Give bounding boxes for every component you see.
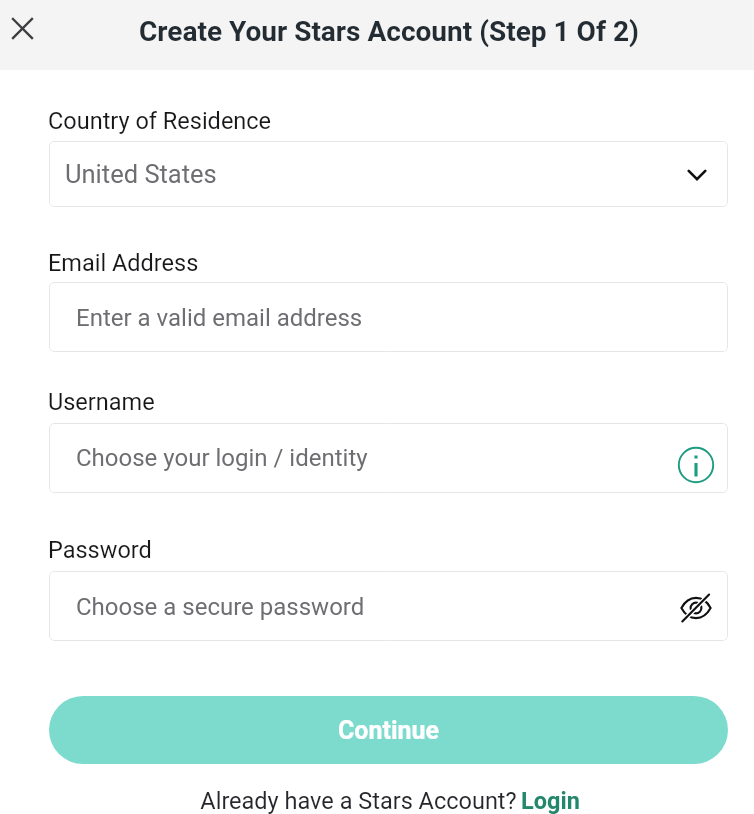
button[interactable]: Continue — [49, 696, 728, 764]
button[interactable]: Login — [521, 787, 580, 814]
staticText: Already have a Stars Account? — [197, 787, 520, 814]
button[interactable]: Choose your login / identity — [49, 423, 728, 493]
button[interactable]: Show password — [672, 584, 720, 632]
staticText: Choose your login / identity — [76, 444, 368, 472]
staticText: Username — [48, 388, 155, 416]
button[interactable]: Choose a secure password — [49, 571, 728, 641]
button[interactable]: Enter a valid email address — [49, 282, 728, 352]
button[interactable]: Username information — [672, 441, 720, 489]
staticText: Email Address — [48, 249, 199, 277]
staticText: Country of Residence — [48, 107, 272, 135]
staticText: Enter a valid email address — [76, 304, 363, 332]
button[interactable]: United States — [49, 141, 728, 207]
staticText: United States — [65, 159, 217, 189]
button[interactable]: Close — [0, 6, 45, 51]
staticText: Continue — [338, 716, 440, 745]
staticText: Choose a secure password — [76, 593, 365, 621]
staticText: Password — [48, 536, 152, 564]
button[interactable]: Select country — [673, 151, 721, 199]
staticText: Create Your Stars Account (Step 1 Of 2) — [139, 15, 639, 48]
